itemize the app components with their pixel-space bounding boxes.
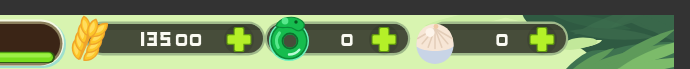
button[interactable]: Add dragon xyxy=(369,26,405,53)
button[interactable]: Add wheat xyxy=(224,26,260,53)
button[interactable]: Experience bar xyxy=(0,21,64,66)
button[interactable]: Wheat amount 13500 xyxy=(88,23,264,55)
button[interactable]: Add bun xyxy=(527,26,563,53)
button[interactable]: Bun amount 0 xyxy=(430,23,567,55)
button[interactable]: Dragon amount 0 xyxy=(267,23,409,55)
